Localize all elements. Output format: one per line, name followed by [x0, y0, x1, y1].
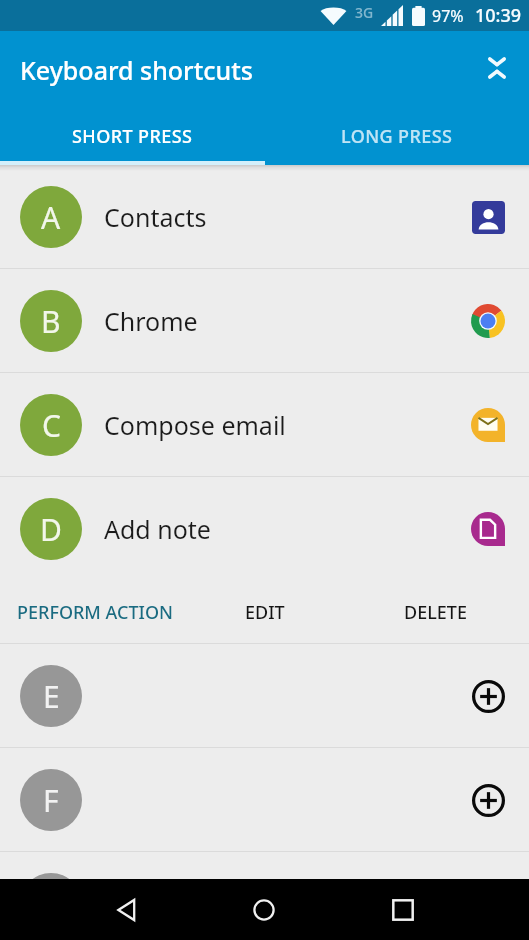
- staticText: 97%: [432, 5, 464, 27]
- staticText: Chrome: [104, 304, 198, 338]
- staticText: LONG PRESS: [341, 124, 453, 149]
- other: Add shortcut: [470, 782, 506, 818]
- staticText: EDIT: [245, 600, 285, 625]
- staticText: F: [43, 780, 59, 821]
- button[interactable]: B: [0, 269, 529, 372]
- staticText: DELETE: [404, 600, 467, 625]
- button[interactable]: DELETE: [404, 600, 467, 625]
- button[interactable]: G: [0, 852, 529, 879]
- staticText: B: [41, 301, 61, 342]
- button[interactable]: Recent apps: [381, 888, 425, 932]
- staticText: Compose email: [104, 408, 286, 442]
- staticText: E: [43, 676, 60, 717]
- button[interactable]: Back: [105, 888, 149, 932]
- button[interactable]: Collapse: [475, 46, 519, 90]
- staticText: Contacts: [104, 200, 207, 234]
- staticText: 3G: [355, 3, 374, 22]
- other: Add shortcut: [470, 678, 506, 714]
- button[interactable]: E: [0, 644, 529, 747]
- button[interactable]: Home: [242, 888, 286, 932]
- staticText: C: [42, 405, 61, 446]
- staticText: 10:39: [475, 3, 522, 28]
- button[interactable]: C: [0, 373, 529, 476]
- staticText: Add note: [104, 512, 211, 546]
- button[interactable]: A: [0, 165, 529, 268]
- button[interactable]: LONG PRESS: [264, 108, 529, 165]
- staticText: SHORT PRESS: [72, 124, 193, 149]
- button[interactable]: EDIT: [245, 600, 285, 625]
- button[interactable]: PERFORM ACTION: [17, 600, 174, 625]
- button[interactable]: F: [0, 748, 529, 851]
- staticText: D: [40, 509, 62, 550]
- staticText: Keyboard shortcuts: [20, 53, 253, 87]
- button[interactable]: SHORT PRESS: [0, 108, 264, 165]
- staticText: PERFORM ACTION: [17, 600, 174, 625]
- button[interactable]: D: [0, 477, 529, 580]
- staticText: A: [41, 197, 61, 238]
